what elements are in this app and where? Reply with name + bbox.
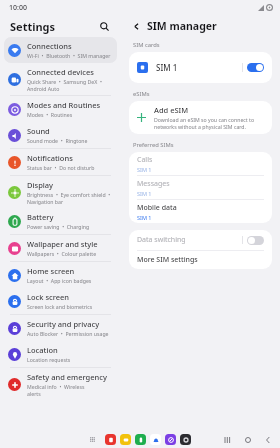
button[interactable]: App 2 — [135, 434, 146, 445]
staticText: eSIMs — [133, 90, 150, 98]
button[interactable]: Notifications — [4, 149, 117, 175]
button[interactable]: Search — [96, 18, 112, 34]
staticText: SIM cards — [133, 41, 160, 49]
button[interactable]: More SIM settings — [129, 251, 272, 269]
button[interactable]: Calls — [129, 152, 272, 175]
staticText: Safety and emergency — [27, 372, 107, 382]
button[interactable]: Home screen — [4, 262, 117, 288]
staticText: Preferred SIMs — [133, 141, 174, 149]
button[interactable]: Security and privacy — [4, 315, 117, 341]
staticText: Android Auto — [27, 85, 60, 92]
button[interactable]: App 0 — [105, 434, 116, 445]
button[interactable]: App 1 — [120, 434, 131, 445]
staticText: Sound mode • Ringtone — [27, 137, 88, 144]
staticText: Navigation bar — [27, 198, 64, 205]
staticText: Layout • App icon badges — [27, 277, 92, 284]
button[interactable]: Home — [242, 434, 254, 446]
staticText: SIM 1 — [156, 62, 242, 73]
staticText: Connections — [27, 41, 72, 51]
staticText: Notifications — [27, 153, 73, 163]
staticText: Auto Blocker • Permission usage — [27, 330, 109, 337]
staticText: Data switching — [137, 235, 242, 245]
staticText: Status bar • Do not disturb — [27, 164, 95, 171]
button[interactable]: SIM 1 — [129, 52, 272, 83]
button[interactable]: Display — [4, 176, 117, 208]
staticText: Lock screen — [27, 292, 70, 302]
button[interactable]: Data switching — [129, 230, 272, 250]
staticText: Home screen — [27, 266, 75, 276]
staticText: Download an eSIM so you can connect to m… — [154, 116, 264, 123]
button[interactable]: Battery — [4, 208, 117, 234]
staticText: Display — [27, 180, 54, 190]
staticText: Mobile data — [137, 203, 177, 213]
staticText: Add eSIM — [154, 105, 189, 115]
button[interactable]: Connected devices — [4, 63, 117, 95]
button[interactable]: Sound — [4, 122, 117, 148]
button[interactable]: App 5 — [180, 434, 191, 445]
button[interactable]: On — [247, 63, 264, 72]
staticText: networks without a physical SIM card. — [154, 123, 246, 130]
staticText: Screen lock and biometrics — [27, 303, 93, 310]
button[interactable]: Location — [4, 341, 117, 367]
staticText: Messages — [137, 179, 170, 189]
staticText: SIM 1 — [137, 190, 152, 197]
staticText: SIM 1 — [137, 214, 152, 221]
staticText: Sound — [27, 126, 50, 136]
staticText: Brightness • Eye comfort shield • — [27, 191, 111, 198]
staticText: Battery — [27, 212, 54, 222]
button[interactable]: Connections — [4, 37, 117, 63]
button[interactable]: Lock screen — [4, 288, 117, 314]
button[interactable]: Back — [262, 434, 274, 446]
staticText: Calls — [137, 155, 153, 165]
staticText: Quick Share • Samsung DeX • — [27, 78, 102, 85]
staticText: Modes and Routines — [27, 100, 101, 110]
staticText: SIM manager — [147, 19, 217, 33]
staticText: Wallpaper and style — [27, 239, 98, 249]
staticText: Power saving • Charging — [27, 223, 90, 230]
staticText: Location requests — [27, 356, 71, 363]
staticText: Modes • Routines — [27, 111, 73, 118]
staticText: alerts — [27, 390, 41, 397]
staticText: Settings — [10, 19, 56, 34]
staticText: SIM 1 — [137, 166, 152, 173]
button[interactable]: Mobile data — [129, 200, 272, 223]
button[interactable]: Messages — [129, 176, 272, 199]
button[interactable]: Apps — [88, 435, 98, 445]
staticText: Medical info • Wireless emergency — [27, 383, 113, 390]
button[interactable]: Off — [247, 236, 264, 245]
button[interactable]: Modes and Routines — [4, 96, 117, 122]
button[interactable]: App 3 — [150, 434, 161, 445]
staticText: Wi-Fi • Bluetooth • SIM manager — [27, 52, 111, 59]
staticText: Location — [27, 345, 58, 355]
button[interactable]: Back — [129, 19, 143, 33]
button[interactable]: Wallpaper and style — [4, 235, 117, 261]
staticText: Security and privacy — [27, 319, 100, 329]
staticText: More SIM settings — [137, 255, 198, 265]
staticText: 10:00 — [9, 3, 27, 13]
button[interactable]: Add eSIM — [129, 101, 272, 134]
button[interactable]: Safety and emergency — [4, 368, 117, 400]
button[interactable]: App 4 — [165, 434, 176, 445]
staticText: Connected devices — [27, 67, 94, 77]
button[interactable]: Recents — [222, 434, 234, 446]
staticText: Wallpapers • Colour palette — [27, 250, 97, 257]
